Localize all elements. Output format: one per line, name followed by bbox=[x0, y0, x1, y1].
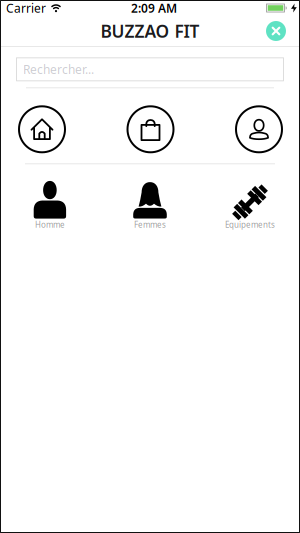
staticText: Carrier bbox=[6, 0, 46, 16]
staticText: Equipements bbox=[225, 219, 275, 230]
button[interactable]: Homme bbox=[33, 180, 66, 232]
staticText: Femmes bbox=[134, 219, 166, 230]
button[interactable]: Profil bbox=[235, 105, 283, 153]
staticText: Homme bbox=[35, 219, 65, 230]
staticText: Rechercher... bbox=[23, 61, 94, 77]
staticText: BUZZAO FIT bbox=[100, 19, 199, 42]
button[interactable]: Femmes bbox=[133, 180, 167, 232]
button[interactable]: Close bbox=[266, 21, 286, 41]
button[interactable]: Equipements bbox=[225, 180, 275, 232]
button[interactable]: Rechercher bbox=[16, 57, 284, 81]
staticText: 2:09 AM bbox=[131, 0, 177, 16]
button[interactable]: Accueil bbox=[18, 105, 66, 153]
button[interactable]: Panier bbox=[126, 105, 174, 153]
